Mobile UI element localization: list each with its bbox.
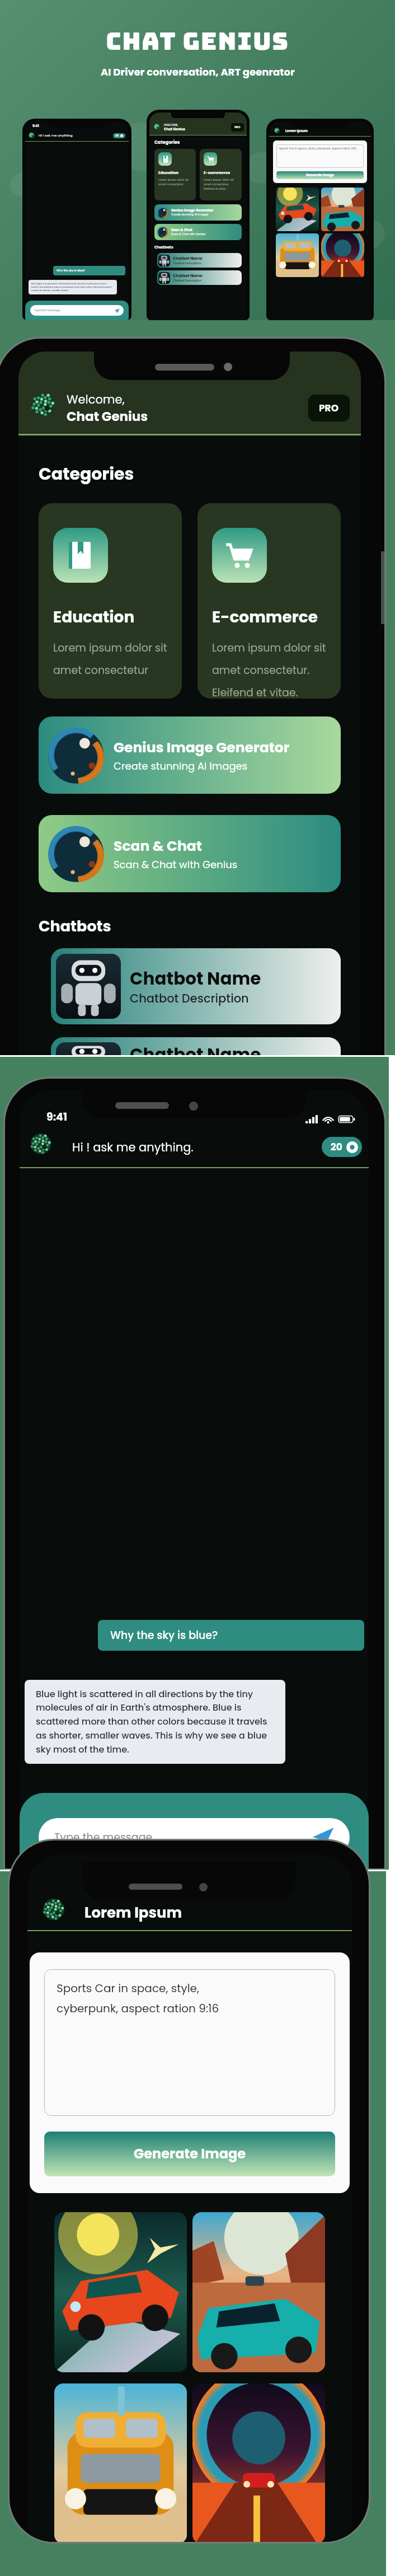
- staticText: Why the sky is blue?: [110, 1628, 218, 1643]
- staticText: 9:41: [46, 1109, 68, 1125]
- staticText: Chatbot Description: [173, 279, 201, 283]
- staticText: Generate Image: [306, 173, 335, 177]
- staticText: Chatbots: [154, 245, 173, 250]
- staticText: Chatbot Name: [173, 256, 203, 261]
- staticText: Scan & Chat with Genius: [171, 232, 206, 236]
- staticText: Lorem ipsum dolor sit amet consectetur: [158, 178, 193, 186]
- button[interactable]: Genius Image Generator: [39, 716, 341, 794]
- staticText: PRO: [234, 125, 241, 129]
- staticText: Create stunning AI Images: [114, 759, 248, 773]
- button[interactable]: Education: [39, 503, 182, 699]
- other: Send: [312, 1826, 334, 1848]
- staticText: Chatbot Name: [130, 966, 261, 990]
- staticText: Chatbot Description: [130, 990, 249, 1006]
- button[interactable]: Type the message...: [39, 1818, 350, 1856]
- staticText: Scan & Chat: [114, 836, 202, 856]
- staticText: Scan & Chat: [171, 228, 192, 232]
- staticText: Chat Genius: [67, 408, 148, 425]
- staticText: Hi ! ask me anything.: [72, 1139, 194, 1155]
- staticText: Chatbot Name: [130, 1042, 261, 1066]
- staticText: E-commerce: [212, 606, 318, 628]
- button[interactable]: Chatbot Name: [51, 948, 341, 1024]
- button[interactable]: 20: [322, 1137, 362, 1157]
- staticText: Blue light is scattered in all direction…: [36, 1688, 274, 1756]
- staticText: Genius Image Generator: [114, 738, 290, 757]
- staticText: Scan & Chat with Genius: [114, 858, 238, 872]
- staticText: Chatbots: [39, 916, 111, 937]
- staticText: Blue light is scattered in all direction…: [31, 282, 114, 292]
- staticText: Sports Car in space, style, cyberpunk, a…: [57, 1980, 219, 2016]
- staticText: Welcome,: [67, 391, 125, 408]
- button[interactable]: Chatbot Name: [51, 1037, 341, 1070]
- staticText: Type the message...: [54, 1830, 159, 1845]
- staticText: 20: [115, 134, 119, 138]
- button[interactable]: E-commerce: [198, 503, 341, 699]
- staticText: Chat Genius: [164, 127, 185, 132]
- staticText: Categories: [154, 139, 180, 146]
- staticText: 20: [331, 1140, 342, 1154]
- staticText: WELCOME,: [164, 123, 178, 127]
- staticText: Lorem Ipsum: [285, 129, 308, 133]
- staticText: Lorem Ipsum: [84, 1903, 182, 1923]
- staticText: Categories: [39, 462, 134, 486]
- button[interactable]: Scan & Chat: [39, 815, 341, 892]
- staticText: E-commerce: [204, 170, 231, 176]
- staticText: Sports Car in space, style, cyberpunk, a…: [279, 147, 356, 151]
- staticText: Education: [158, 170, 179, 176]
- staticText: Education: [53, 606, 135, 628]
- staticText: Generate Image: [134, 2144, 246, 2163]
- staticText: Lorem ipsum dolor sit amet consectetur: [53, 640, 174, 678]
- staticText: Chatbot Name: [173, 273, 203, 279]
- staticText: Chatbot Description: [173, 261, 201, 265]
- staticText: Lorem ipsum dolor sit amet consectetur. …: [204, 178, 239, 191]
- button[interactable]: Generate Image: [44, 2132, 335, 2176]
- staticText: CHAT GENIUS: [106, 25, 289, 57]
- staticText: 9:41: [32, 124, 39, 128]
- staticText: Genius Image Generator: [171, 208, 214, 213]
- staticText: AI Driver conversation, ART geenrator: [101, 65, 295, 79]
- button[interactable]: PRO: [308, 395, 350, 421]
- staticText: Lorem ipsum dolor sit amet consectetur. …: [212, 640, 333, 699]
- staticText: Why the sky is blue?: [57, 269, 85, 273]
- staticText: Create stunning AI Images: [171, 213, 209, 217]
- staticText: Hi ! ask me anything.: [39, 133, 73, 138]
- staticText: PRO: [319, 401, 339, 415]
- staticText: Type the message...: [34, 308, 62, 312]
